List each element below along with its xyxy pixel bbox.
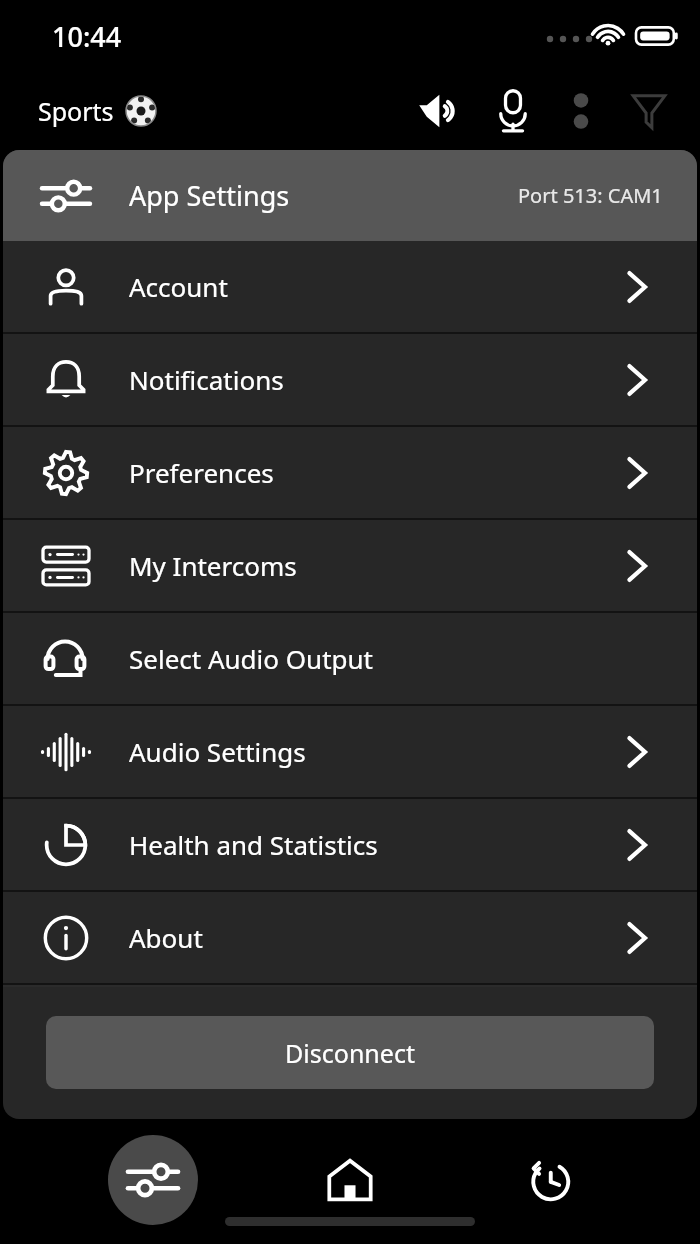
button[interactable]: Disconnect [46, 1016, 654, 1089]
button[interactable]: About [3, 892, 697, 983]
button[interactable]: Speaker volume [402, 74, 476, 148]
button[interactable]: Home [305, 1135, 395, 1225]
button[interactable]: App Settings [3, 150, 697, 241]
button[interactable]: More options [550, 80, 612, 142]
button[interactable]: Preferences [3, 427, 697, 518]
staticText: Account [129, 269, 228, 304]
staticText: Select Audio Output [129, 641, 374, 676]
button[interactable]: Settings [108, 1135, 198, 1225]
button[interactable]: Sports [38, 94, 156, 128]
staticText: Preferences [129, 455, 274, 490]
button[interactable]: Account [3, 241, 697, 332]
button[interactable]: Notifications [3, 334, 697, 425]
staticText: Health and Statistics [129, 827, 378, 862]
staticText: Disconnect [285, 1036, 415, 1070]
staticText: App Settings [129, 177, 290, 214]
staticText: My Intercoms [129, 548, 297, 583]
staticText: Audio Settings [129, 734, 306, 769]
button[interactable]: History [503, 1135, 593, 1225]
button[interactable]: My Intercoms [3, 520, 697, 611]
staticText: About [129, 920, 203, 955]
staticText: Port 513: CAM1 [518, 182, 663, 209]
button[interactable]: Audio Settings [3, 706, 697, 797]
staticText: Notifications [129, 362, 284, 397]
button[interactable]: Health and Statistics [3, 799, 697, 890]
button[interactable]: Microphone [476, 74, 550, 148]
button[interactable]: Select Audio Output [3, 613, 697, 704]
staticText: 10:44 [52, 18, 122, 55]
button[interactable]: Filter [612, 74, 686, 148]
staticText: Sports [38, 94, 114, 128]
